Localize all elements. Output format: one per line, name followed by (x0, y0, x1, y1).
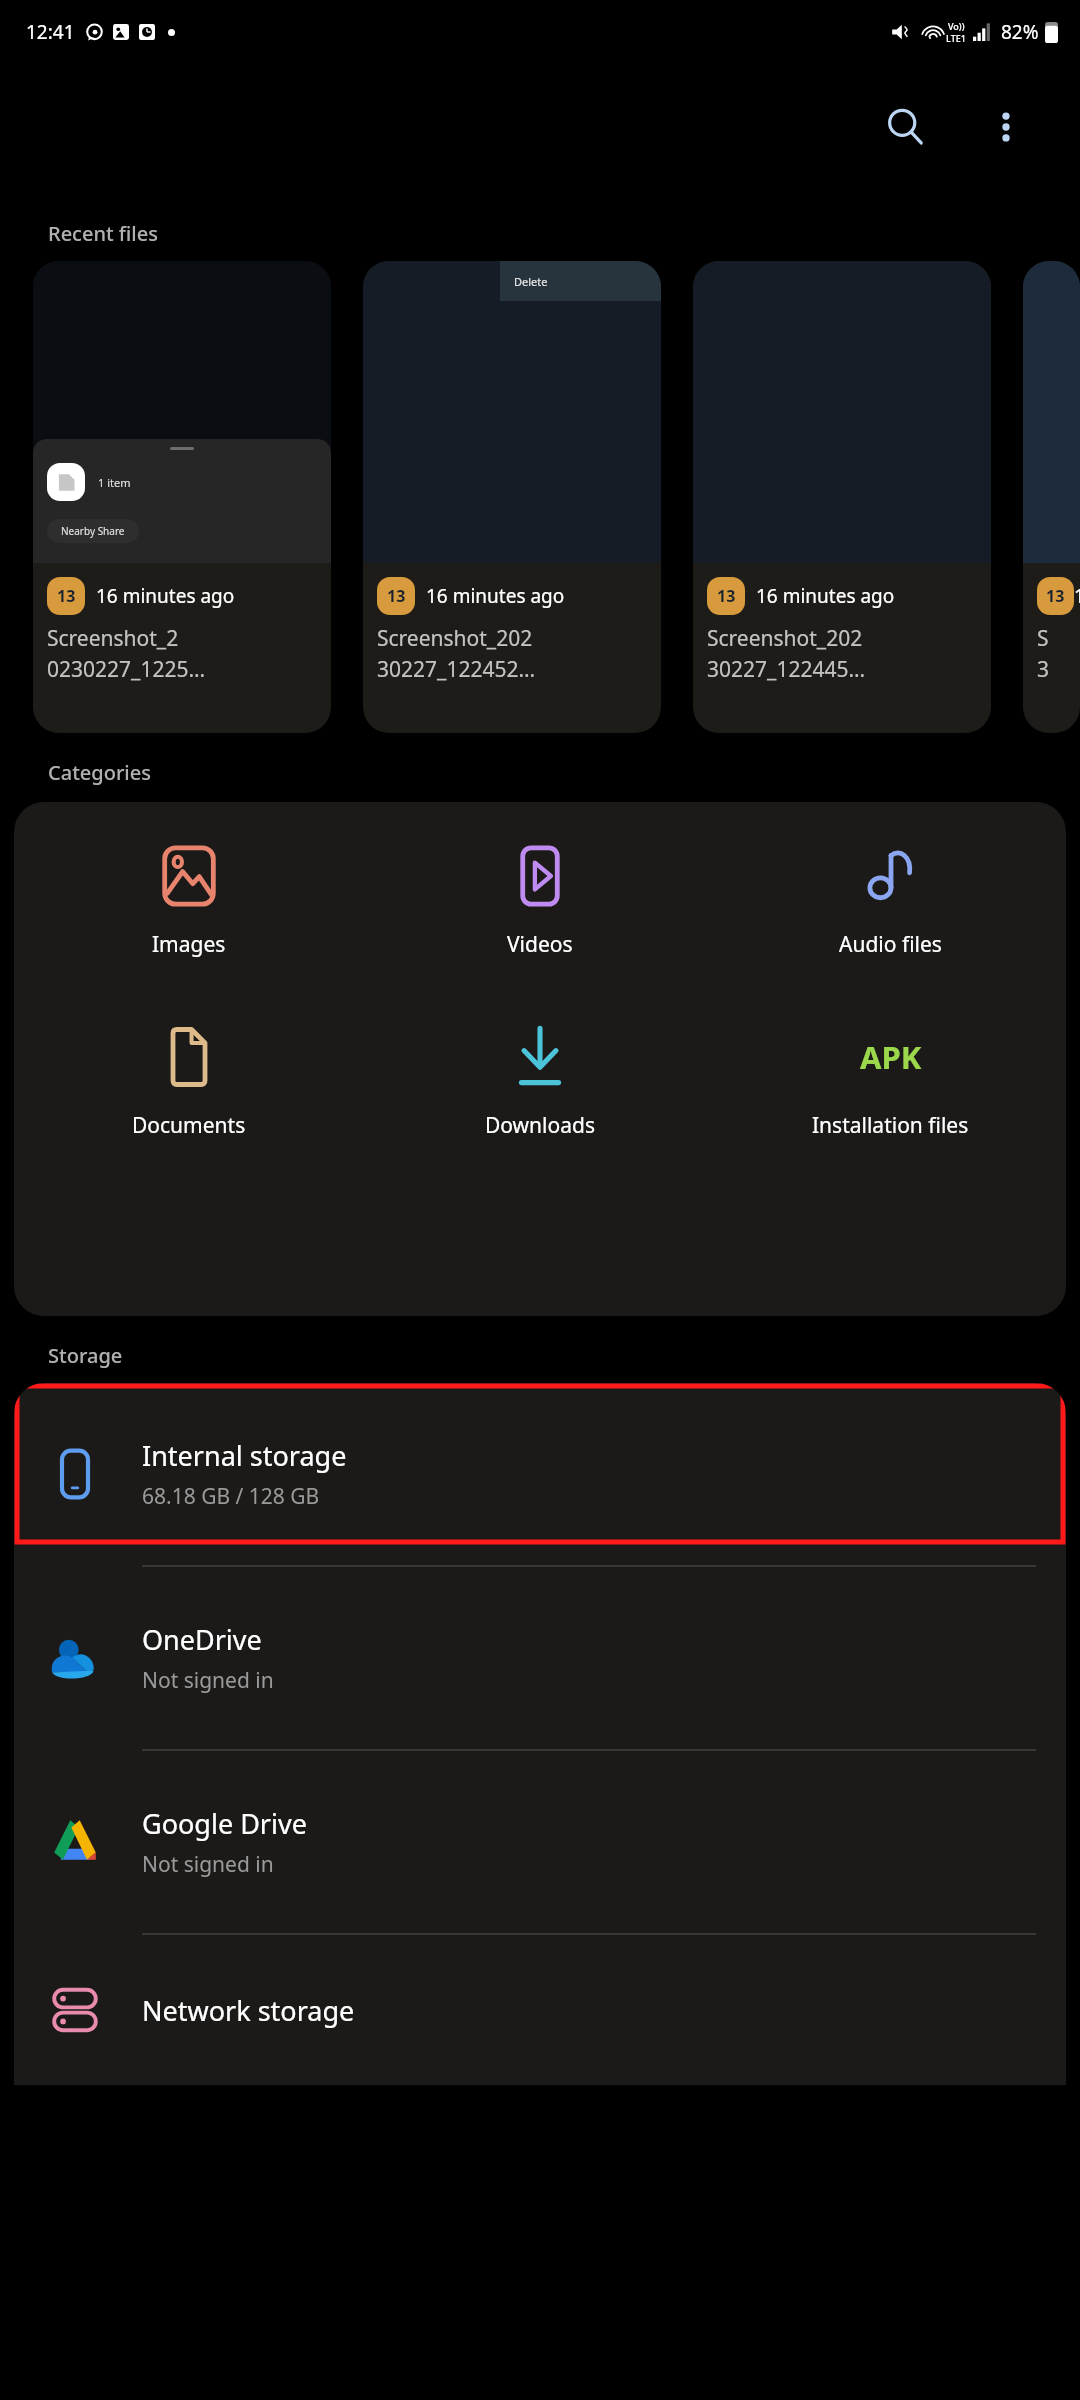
staticText: 1 item (98, 475, 131, 490)
staticText: Categories (48, 759, 151, 786)
staticText: 13 (1046, 585, 1065, 607)
staticText: 13 (387, 585, 406, 607)
staticText: Network storage (142, 1992, 355, 2029)
staticText: Nearby Share (61, 524, 125, 538)
button[interactable]: More options (968, 89, 1044, 165)
staticText: Audio files (839, 930, 942, 959)
staticText: Downloads (485, 1111, 595, 1140)
button[interactable]: Documents (14, 1021, 364, 1144)
staticText: 16 minutes ago (756, 583, 895, 609)
button[interactable]: Network storage (14, 1935, 1066, 2085)
staticText: Screenshot_202 30227_122445… (707, 624, 866, 683)
staticText: Delete (514, 274, 548, 289)
staticText: Not signed in (142, 1850, 274, 1879)
staticText: Google Drive (142, 1805, 307, 1842)
staticText: Vo)) (948, 20, 965, 32)
button[interactable]: Nearby Share (47, 519, 139, 543)
staticText: Storage (48, 1342, 123, 1369)
button[interactable]: OneDrive (14, 1567, 1066, 1751)
staticText: LTE1 (946, 32, 966, 44)
staticText: 82% (1001, 19, 1039, 45)
staticText: 16 minutes ago (426, 583, 565, 609)
button[interactable]: 13 (693, 261, 991, 733)
staticText: 13 (717, 585, 736, 607)
staticText: Images (152, 930, 226, 959)
button[interactable]: 13 (1023, 261, 1080, 733)
button[interactable]: APK (715, 1021, 1066, 1144)
staticText: Internal storage (142, 1437, 347, 1474)
staticText: OneDrive (142, 1621, 262, 1658)
staticText: 13 (57, 585, 76, 607)
staticText: 16 minutes ago (96, 583, 235, 609)
staticText: 68.18 GB / 128 GB (142, 1482, 320, 1511)
button[interactable]: Search (868, 89, 944, 165)
button[interactable]: Videos (364, 840, 715, 963)
staticText: Not signed in (142, 1666, 274, 1695)
staticText: Recent files (48, 220, 158, 247)
button[interactable]: 1 item (33, 261, 331, 733)
button[interactable]: Audio files (715, 840, 1066, 963)
staticText: Screenshot_2 0230227_1225… (47, 624, 206, 683)
staticText: Videos (507, 930, 573, 959)
staticText: APK (860, 1036, 922, 1078)
staticText: 12:41 (26, 19, 75, 45)
button[interactable]: Google Drive (14, 1751, 1066, 1935)
staticText: Installation files (812, 1111, 969, 1140)
staticText: S 3 (1037, 624, 1050, 683)
button[interactable]: Delete (363, 261, 661, 733)
button[interactable]: Internal storage (14, 1383, 1066, 1567)
staticText: Screenshot_202 30227_122452… (377, 624, 536, 683)
button[interactable]: Downloads (364, 1021, 715, 1144)
staticText: Documents (132, 1111, 246, 1140)
button[interactable]: Images (14, 840, 364, 963)
